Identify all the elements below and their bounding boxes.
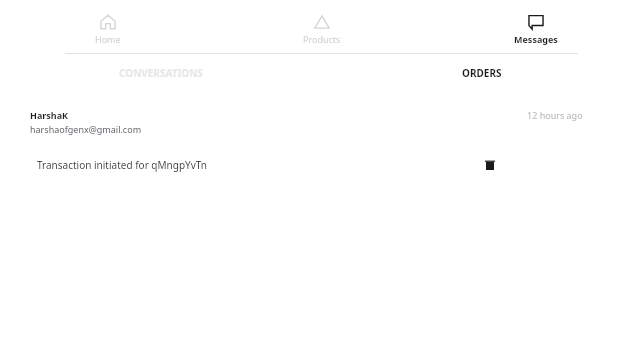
staticText: ORDERS [462,66,502,80]
button[interactable]: Home [0,0,215,53]
staticText: harshaofgenx@gmail.com [30,123,142,135]
button[interactable]: Delete [481,156,499,174]
staticText: Products [303,33,341,45]
button[interactable]: Messages [429,0,643,53]
button[interactable]: HarshaK [4,96,639,194]
staticText: 12 hours ago [527,109,583,121]
staticText: Transaction initiated for qMngpYvTn [37,158,208,172]
button[interactable]: CONVERSATIONS [0,54,321,92]
button[interactable]: Products [215,0,429,53]
staticText: Home [95,33,121,45]
staticText: CONVERSATIONS [119,66,203,80]
staticText: HarshaK [30,109,69,121]
button[interactable]: ORDERS [321,54,643,92]
staticText: Messages [514,33,558,45]
